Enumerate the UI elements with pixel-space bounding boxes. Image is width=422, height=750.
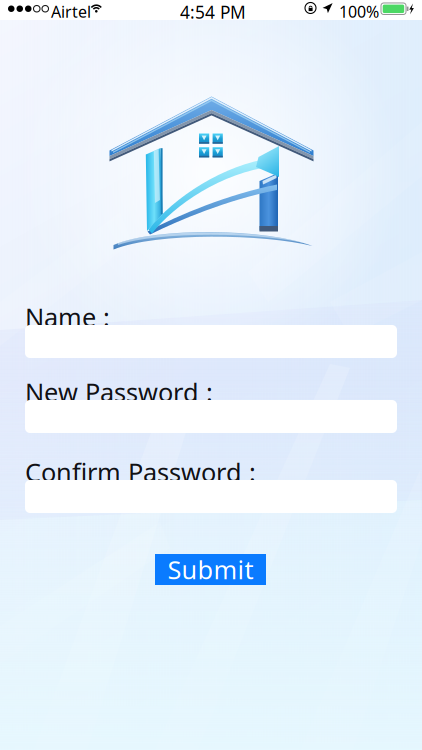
button[interactable]: Submit xyxy=(155,554,266,585)
staticText: Airtel xyxy=(51,1,91,22)
staticText: 100% xyxy=(339,1,379,22)
staticText: Confirm Password : xyxy=(25,455,256,489)
staticText: Name : xyxy=(25,300,110,334)
staticText: 4:54 PM xyxy=(180,0,246,23)
staticText: Submit xyxy=(167,553,253,586)
staticText: New Password : xyxy=(25,375,213,409)
